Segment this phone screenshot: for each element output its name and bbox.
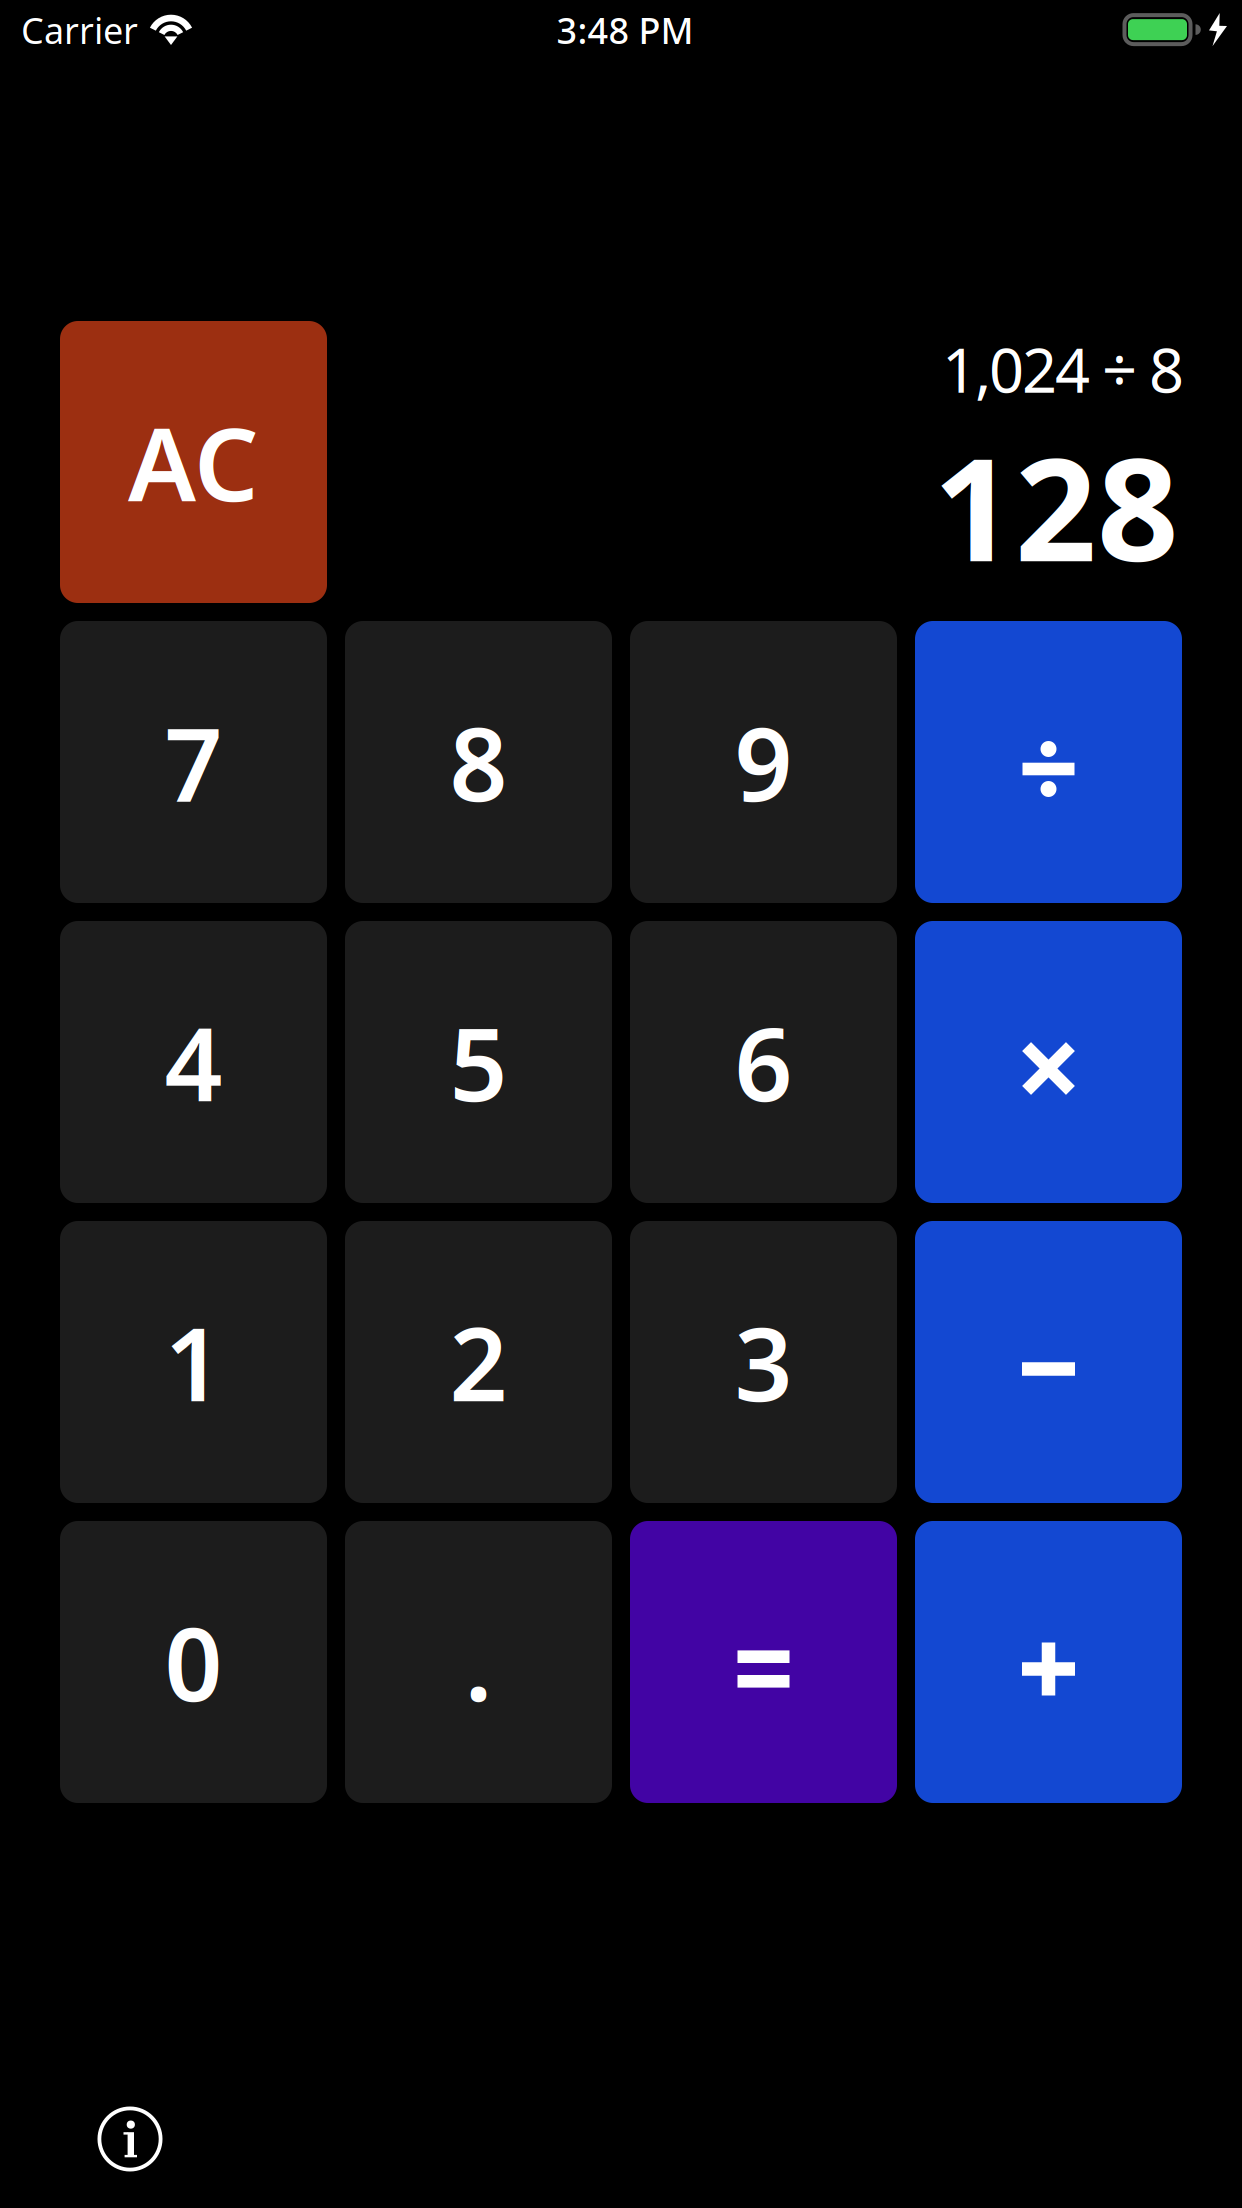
staticText: 0 bbox=[164, 1595, 222, 1729]
staticText: 9 bbox=[734, 695, 792, 829]
button[interactable]: Multiply bbox=[915, 921, 1182, 1203]
staticText: 4 bbox=[164, 995, 222, 1129]
staticText: 3 bbox=[734, 1295, 792, 1429]
staticText: . bbox=[464, 1595, 492, 1729]
button[interactable]: Info bbox=[95, 2104, 165, 2174]
button[interactable]: AC bbox=[60, 321, 327, 603]
button[interactable]: 8 bbox=[345, 621, 612, 903]
button[interactable]: Subtract bbox=[915, 1221, 1182, 1503]
button[interactable]: . bbox=[345, 1521, 612, 1803]
button[interactable]: 4 bbox=[60, 921, 327, 1203]
button[interactable]: Divide bbox=[915, 621, 1182, 903]
staticText: 2 bbox=[449, 1295, 507, 1429]
button[interactable]: Add bbox=[915, 1521, 1182, 1803]
staticText: 6 bbox=[734, 995, 792, 1129]
button[interactable]: 6 bbox=[630, 921, 897, 1203]
staticText: 1,024 ÷ 8 bbox=[942, 328, 1184, 410]
button[interactable]: 2 bbox=[345, 1221, 612, 1503]
staticText: 5 bbox=[449, 995, 507, 1129]
button[interactable]: 7 bbox=[60, 621, 327, 903]
button[interactable]: 1 bbox=[60, 1221, 327, 1503]
staticText: Carrier bbox=[21, 6, 138, 54]
button[interactable]: Equals bbox=[630, 1521, 897, 1803]
button[interactable]: 5 bbox=[345, 921, 612, 1203]
staticText: AC bbox=[128, 395, 259, 529]
staticText: 128 bbox=[933, 411, 1179, 601]
button[interactable]: 0 bbox=[60, 1521, 327, 1803]
staticText: 1 bbox=[164, 1295, 222, 1429]
staticText: 8 bbox=[449, 695, 507, 829]
staticText: 7 bbox=[164, 695, 222, 829]
staticText: 3:48 PM bbox=[556, 6, 693, 54]
button[interactable]: 3 bbox=[630, 1221, 897, 1503]
button[interactable]: 9 bbox=[630, 621, 897, 903]
